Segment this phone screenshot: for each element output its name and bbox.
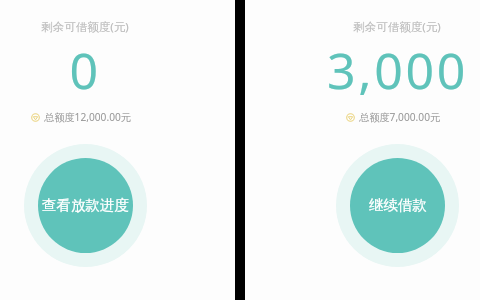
staticText: 总额度12,000.00元 [44,110,132,124]
staticText: 3,000 [327,36,468,104]
staticText: 剩余可借额度(元) [353,19,441,35]
staticText: 查看放款进度 [42,196,129,214]
button[interactable]: 继续借款 [336,144,459,267]
staticText: 总额度7,000.00元 [359,110,441,124]
staticText: 剩余可借额度(元) [41,19,129,35]
staticText: 继续借款 [369,196,427,214]
staticText: 0 [69,36,101,104]
button[interactable]: 查看放款进度 [24,144,147,267]
